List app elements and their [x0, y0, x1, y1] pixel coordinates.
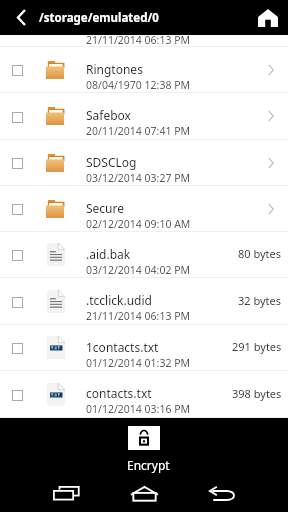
- staticText: Safebox: [86, 107, 131, 123]
- button[interactable]: .aid.bak: [0, 232, 288, 277]
- staticText: 21/11/2014 06:13 PM: [86, 309, 191, 323]
- staticText: /storage/emulated/0: [39, 10, 159, 26]
- button[interactable]: Encrypt: [0, 418, 288, 474]
- staticText: .aid.bak: [86, 246, 131, 262]
- button[interactable]: Back: [178, 474, 267, 512]
- staticText: Secure: [86, 200, 125, 216]
- staticText: .tcclick.udid: [86, 292, 152, 308]
- button[interactable]: SDSCLog: [0, 140, 288, 185]
- staticText: 01/12/2014 03:16 PM: [86, 402, 191, 416]
- staticText: contacts.txt: [86, 385, 152, 401]
- staticText: 32 bytes: [238, 293, 282, 308]
- button[interactable]: Back: [0, 0, 42, 35]
- staticText: Encrypt: [127, 457, 170, 473]
- button[interactable]: .tcclick.udid: [0, 278, 288, 324]
- staticText: 1contacts.txt: [86, 339, 159, 355]
- staticText: 01/12/2014 01:32 PM: [86, 356, 191, 370]
- button[interactable]: 21/11/2014 06:13 PM: [0, 35, 288, 46]
- staticText: 20/11/2014 07:41 PM: [86, 124, 191, 138]
- button[interactable]: contacts.txt: [0, 371, 288, 417]
- staticText: 398 bytes: [232, 386, 282, 401]
- button[interactable]: Ringtones: [0, 47, 288, 92]
- staticText: 21/11/2014 06:13 PM: [86, 33, 191, 44]
- staticText: 03/12/2014 03:27 PM: [86, 171, 191, 185]
- button[interactable]: 1contacts.txt: [0, 325, 288, 370]
- staticText: 80 bytes: [238, 246, 282, 261]
- button[interactable]: Secure: [0, 186, 288, 231]
- staticText: 02/12/2014 09:10 AM: [86, 217, 191, 231]
- staticText: 08/04/1970 12:38 PM: [86, 78, 191, 92]
- staticText: SDSCLog: [86, 154, 137, 170]
- button[interactable]: Home: [110, 474, 178, 512]
- staticText: Ringtones: [86, 61, 143, 77]
- button[interactable]: Home: [254, 0, 281, 35]
- button[interactable]: Safebox: [0, 93, 288, 139]
- button[interactable]: Recents: [22, 474, 110, 512]
- staticText: 03/12/2014 04:02 PM: [86, 263, 191, 277]
- staticText: 291 bytes: [232, 339, 282, 354]
